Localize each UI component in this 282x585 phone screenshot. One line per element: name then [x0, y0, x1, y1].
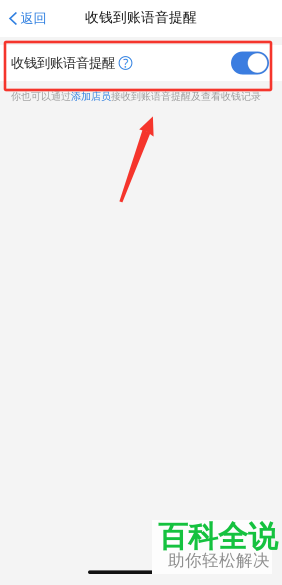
staticText: 助你轻松解决 [168, 550, 270, 571]
button[interactable]: 返回 [0, 0, 54, 37]
staticText: 收钱到账语音提醒 [11, 55, 115, 71]
button[interactable]: 添加店员 [71, 90, 111, 103]
staticText: 添加店员 [71, 90, 111, 103]
staticText: 百科全说 [158, 518, 278, 556]
staticText: 你也可以通过 [11, 90, 71, 103]
staticText: 接收到账语音提醒及查看收钱记录 [111, 90, 261, 103]
staticText: ? [123, 55, 128, 71]
button[interactable]: 收钱到账语音提醒开关 [231, 51, 269, 74]
button[interactable]: 帮助 [115, 50, 136, 75]
staticText: 返回 [20, 10, 46, 27]
staticText: 收钱到账语音提醒 [85, 9, 197, 26]
